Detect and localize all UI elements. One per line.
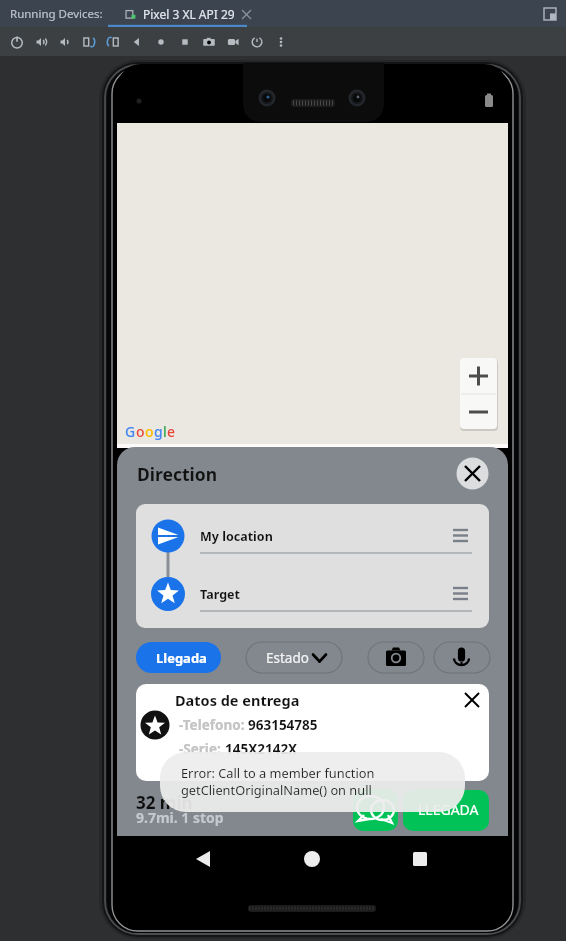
button[interactable]: Power: [5, 30, 29, 54]
staticText: e: [167, 422, 176, 441]
staticText: 9.7mi. 1 stop: [136, 808, 224, 827]
button[interactable]: Overview: [173, 30, 197, 54]
staticText: Llegada: [156, 649, 207, 667]
staticText: Target: [200, 586, 240, 603]
staticText: -Telefono:: [179, 716, 248, 734]
staticText: Estado: [266, 649, 309, 667]
button[interactable]: Back: [125, 30, 149, 54]
other: Close tab: [242, 10, 251, 19]
staticText: Error: Call to a member function: [181, 764, 375, 781]
staticText: o: [136, 422, 145, 441]
button[interactable]: More: [269, 30, 293, 54]
staticText: 32 min: [136, 791, 193, 814]
staticText: l: [163, 422, 167, 441]
staticText: Direction: [137, 462, 218, 486]
staticText: g: [154, 422, 163, 441]
staticText: My location: [200, 528, 273, 545]
button[interactable]: Volume up: [29, 30, 53, 54]
button[interactable]: Home: [149, 30, 173, 54]
other: Layout: [544, 8, 556, 20]
staticText: 145X2142X: [225, 740, 298, 758]
staticText: 963154785: [248, 716, 318, 734]
button[interactable]: Volume down: [53, 30, 77, 54]
button[interactable]: Pixel 3 XL API 29: [125, 6, 251, 22]
staticText: Datos de entrega: [175, 690, 300, 710]
button[interactable]: History: [245, 30, 269, 54]
button[interactable]: Rotate right: [101, 30, 125, 54]
staticText: Running Devices:: [10, 6, 103, 22]
button[interactable]: Rotate left: [77, 30, 101, 54]
staticText: o: [145, 422, 154, 441]
button[interactable]: Record: [221, 30, 245, 54]
staticText: -Serie:: [179, 740, 225, 758]
staticText: LLEGADA: [418, 800, 479, 819]
button[interactable]: Screenshot: [197, 30, 221, 54]
staticText: Pixel 3 XL API 29: [143, 6, 235, 22]
staticText: G: [125, 422, 136, 441]
staticText: getClientOriginalName() on null: [181, 781, 372, 798]
